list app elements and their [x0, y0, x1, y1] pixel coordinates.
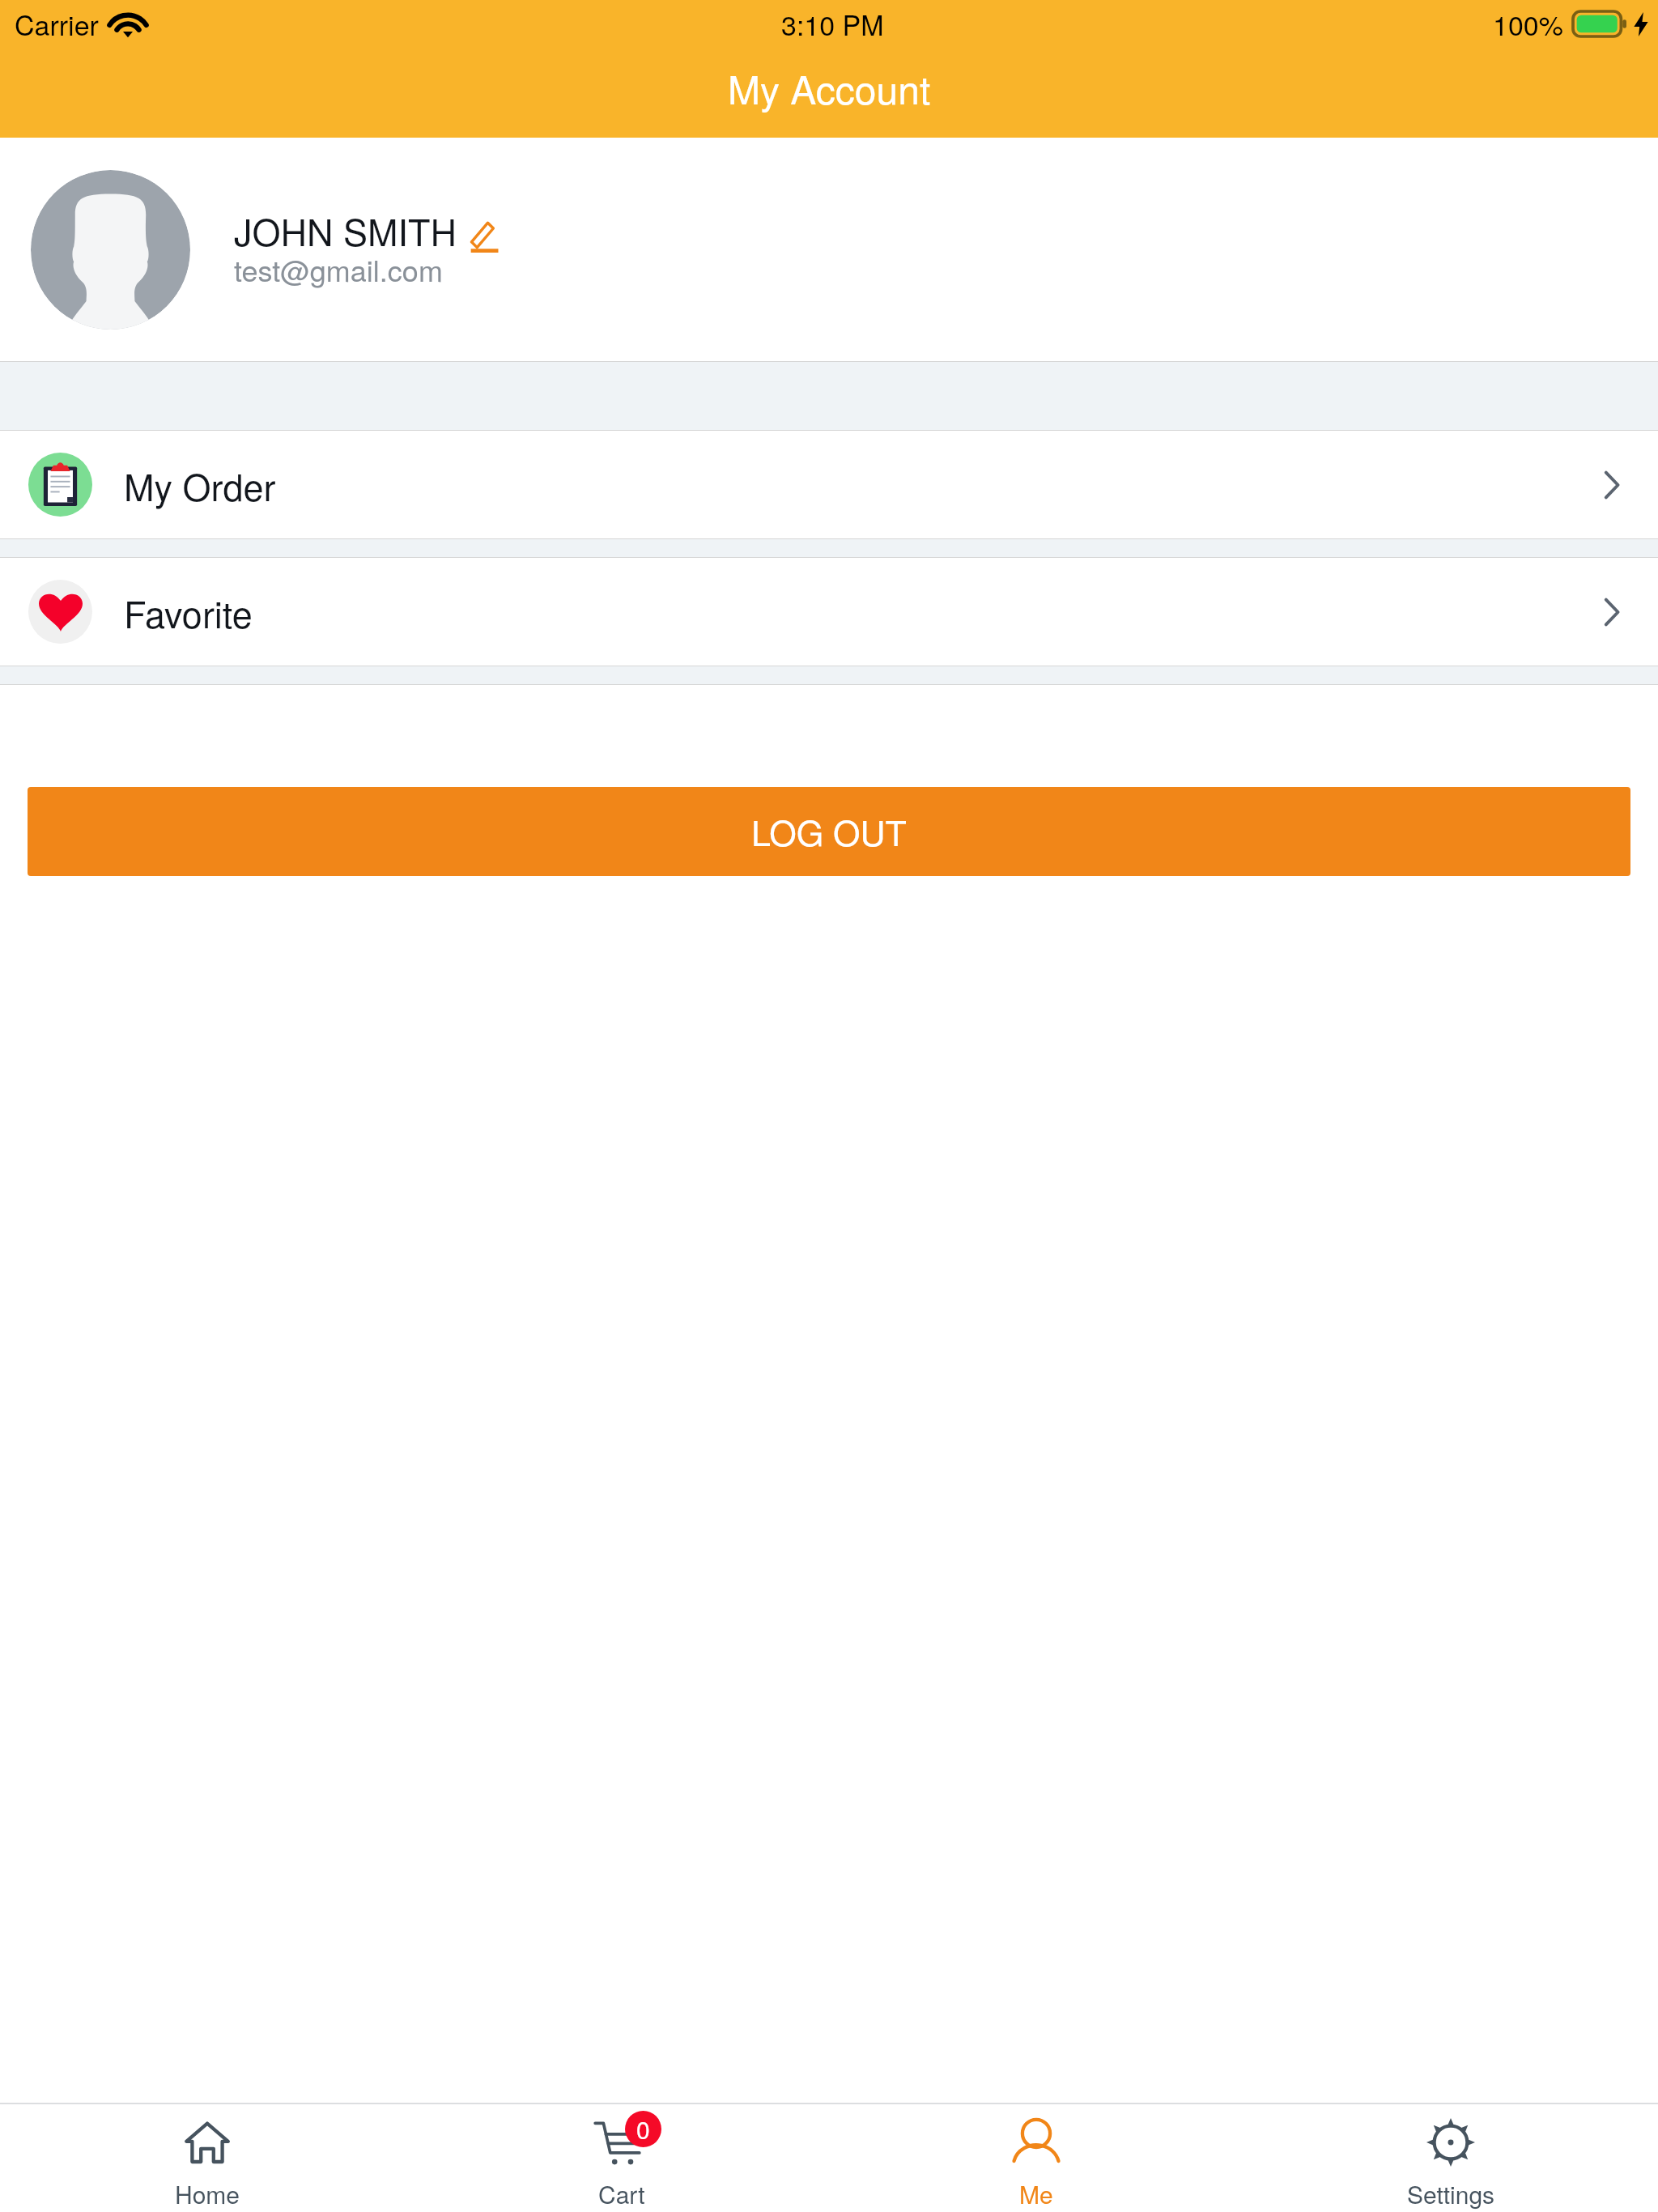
button[interactable]: Favorite [0, 558, 1658, 666]
button[interactable]: JOHN SMITH [0, 138, 1658, 361]
staticText: Me [1019, 2176, 1053, 2211]
staticText: My Account [728, 60, 931, 116]
staticText: Home [175, 2176, 240, 2211]
button[interactable]: 0 [414, 2104, 829, 2212]
staticText: test@gmail.com [234, 249, 443, 291]
staticText: 3:10 PM [781, 4, 884, 44]
staticText: 100% [1493, 4, 1563, 44]
button[interactable]: Settings [1243, 2104, 1658, 2212]
staticText: JOHN SMITH [234, 204, 457, 256]
staticText: Cart [598, 2176, 645, 2211]
staticText: 0 [636, 2112, 650, 2146]
staticText: LOG OUT [751, 806, 907, 857]
staticText: Carrier [15, 4, 99, 44]
staticText: Favorite [124, 586, 253, 638]
button[interactable]: My Order [0, 431, 1658, 538]
button[interactable]: Me [829, 2104, 1243, 2212]
staticText: My Order [124, 459, 276, 511]
button[interactable]: LOG OUT [28, 787, 1630, 876]
staticText: Settings [1407, 2176, 1495, 2211]
button[interactable]: Home [0, 2104, 414, 2212]
other: Edit name [469, 220, 500, 253]
